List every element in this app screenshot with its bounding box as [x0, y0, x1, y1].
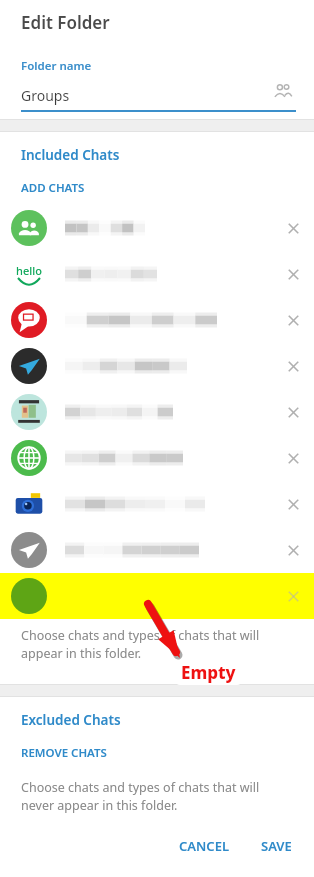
button[interactable]: Remove chat — [0, 297, 314, 343]
staticText: Folder name — [21, 58, 92, 74]
button[interactable]: Remove chat — [0, 481, 314, 527]
button[interactable]: Remove chat — [278, 581, 308, 611]
staticText: Choose chats and types of chats that wil… — [21, 779, 260, 814]
staticText: SAVE — [261, 837, 292, 855]
button[interactable]: Remove chat — [278, 259, 308, 289]
staticText: CANCEL — [179, 837, 229, 855]
staticText: Edit Folder — [21, 11, 110, 34]
button[interactable]: Remove chat — [0, 205, 314, 251]
staticText: Included Chats — [21, 146, 120, 164]
button[interactable]: Remove chat — [0, 343, 314, 389]
button[interactable]: Remove chat — [278, 489, 308, 519]
staticText: REMOVE CHATS — [21, 745, 107, 761]
staticText: hello — [16, 263, 42, 278]
button[interactable]: Remove chat — [278, 213, 308, 243]
button[interactable]: ADD CHATS — [0, 180, 106, 196]
staticText: Choose chats and types of chats that wil… — [21, 627, 260, 662]
button[interactable]: Folder icon — [270, 79, 296, 105]
staticText: Groups — [21, 86, 270, 105]
button[interactable]: hello — [0, 251, 314, 297]
button[interactable]: Remove chat — [0, 527, 314, 573]
staticText: ADD CHATS — [21, 180, 85, 196]
button[interactable]: Remove chat — [278, 535, 308, 565]
button[interactable]: SAVE — [253, 831, 300, 861]
button[interactable]: Remove chat — [278, 443, 308, 473]
staticText: Empty — [181, 661, 236, 684]
button[interactable]: REMOVE CHATS — [0, 745, 128, 761]
staticText: Excluded Chats — [21, 711, 121, 729]
button[interactable]: Remove chat — [0, 389, 314, 435]
button[interactable]: Remove chat — [0, 573, 314, 619]
button[interactable]: Remove chat — [278, 397, 308, 427]
button[interactable]: Remove chat — [278, 351, 308, 381]
button[interactable]: Remove chat — [278, 305, 308, 335]
button[interactable]: CANCEL — [169, 831, 239, 861]
button[interactable]: Remove chat — [0, 435, 314, 481]
